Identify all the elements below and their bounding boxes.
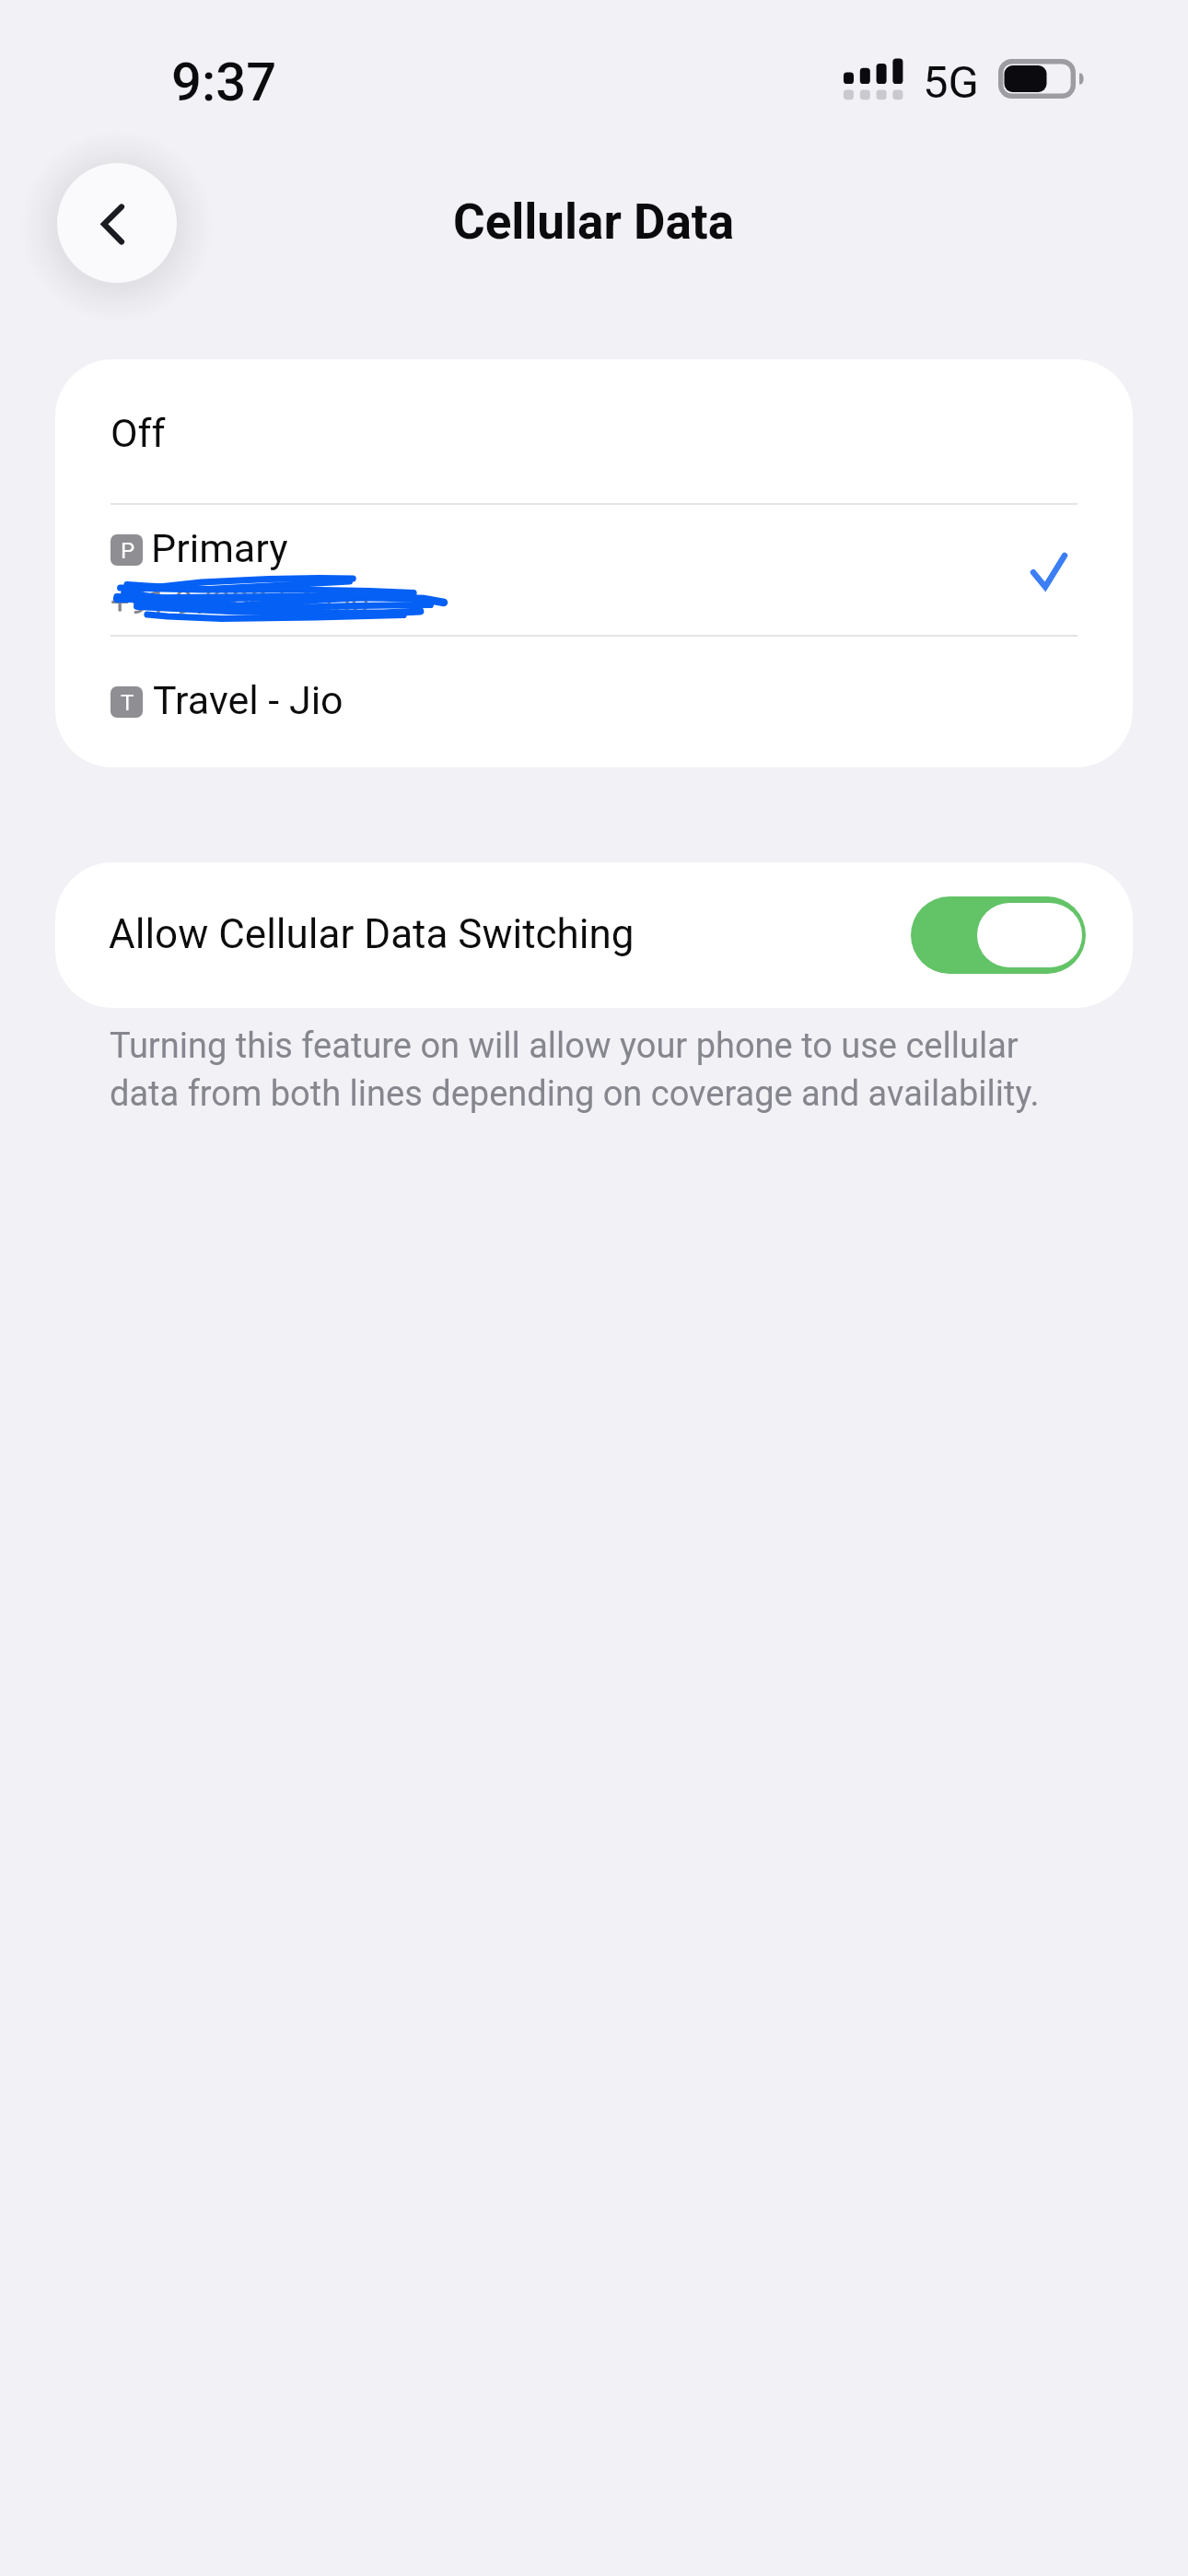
staticText: Primary — [151, 525, 288, 571]
staticText: P — [121, 538, 135, 564]
staticText: T — [121, 690, 134, 716]
staticText: 5G — [923, 56, 979, 109]
staticText: Turning this feature on will allow your … — [110, 1025, 1072, 1114]
staticText: Off — [111, 410, 166, 456]
button[interactable]: Off — [55, 359, 1133, 503]
staticText: +91 97000 54550 — [111, 583, 370, 622]
staticText: Travel - Jio — [153, 677, 344, 723]
staticText: Cellular Data — [453, 193, 735, 251]
button[interactable]: Allow Cellular Data Switching — [55, 862, 1133, 1008]
button[interactable]: T — [55, 637, 1133, 767]
staticText: Allow Cellular Data Switching — [109, 910, 635, 958]
button[interactable]: Back — [57, 163, 177, 283]
button[interactable]: P — [55, 505, 1133, 635]
staticText: 9:37 — [171, 51, 277, 113]
